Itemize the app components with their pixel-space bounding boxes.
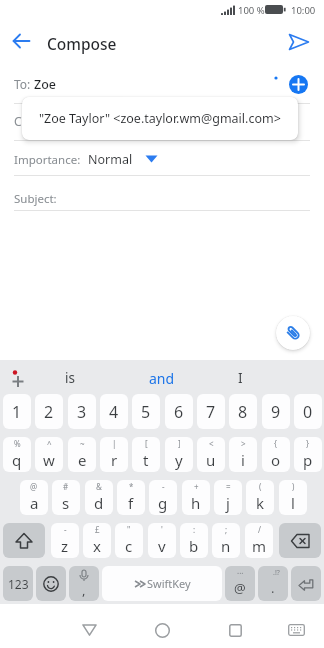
button[interactable]: [3, 523, 45, 558]
staticText: -: [64, 524, 67, 535]
button[interactable]: #: [52, 480, 80, 515]
button[interactable]: 6: [165, 394, 193, 429]
staticText: @: [234, 579, 246, 597]
button[interactable]: (: [246, 480, 274, 515]
staticText: i: [241, 450, 245, 470]
button[interactable]: [219, 614, 251, 646]
staticText: 7: [206, 401, 216, 423]
staticText: x: [93, 536, 101, 556]
button[interactable]: 2: [35, 394, 63, 429]
button[interactable]: 7: [197, 394, 225, 429]
staticText: w: [43, 450, 55, 470]
staticText: h: [191, 493, 201, 513]
button[interactable]: +: [182, 480, 210, 515]
button[interactable]: 3: [68, 394, 96, 429]
button[interactable]: &: [85, 480, 113, 515]
staticText: To:: [14, 76, 31, 92]
button[interactable]: >: [229, 437, 257, 472]
button[interactable]: [280, 614, 312, 646]
staticText: y: [175, 450, 183, 470]
button[interactable]: }: [294, 437, 322, 472]
button[interactable]: <: [197, 437, 225, 472]
button[interactable]: [280, 23, 318, 61]
staticText: {: [274, 438, 278, 449]
button[interactable]: -: [51, 523, 79, 558]
button[interactable]: £: [83, 523, 111, 558]
staticText: n: [221, 536, 231, 556]
staticText: g: [158, 493, 168, 513]
button[interactable]: {: [262, 437, 290, 472]
button[interactable]: :: [180, 523, 208, 558]
staticText: /: [258, 524, 261, 535]
button[interactable]: /: [245, 523, 273, 558]
staticText: %: [14, 438, 21, 449]
button[interactable]: and: [132, 363, 192, 393]
staticText: |: [112, 438, 117, 449]
staticText: ^: [47, 438, 52, 449]
staticText: @: [30, 481, 38, 492]
button[interactable]: 123: [3, 566, 33, 601]
button[interactable]: ,: [69, 566, 99, 601]
button[interactable]: [6, 26, 36, 56]
button[interactable]: is: [40, 363, 100, 393]
staticText: ~: [80, 438, 85, 449]
staticText: is: [65, 369, 75, 387]
button[interactable]: @: [20, 480, 48, 515]
button[interactable]: [: [132, 437, 160, 472]
button[interactable]: ": [115, 523, 143, 558]
button[interactable]: 4: [100, 394, 128, 429]
button[interactable]: 1: [3, 394, 31, 429]
staticText: s: [62, 493, 70, 513]
staticText: ...: [237, 566, 244, 576]
staticText: u: [206, 450, 216, 470]
staticText: I: [238, 369, 243, 387]
button[interactable]: .!?: [258, 566, 288, 601]
button[interactable]: [73, 614, 105, 646]
staticText: j: [226, 493, 230, 513]
button[interactable]: [276, 316, 310, 350]
staticText: .!?: [273, 568, 280, 578]
button[interactable]: [146, 614, 178, 646]
staticText: l: [291, 493, 295, 513]
staticText: 2: [44, 401, 54, 423]
button[interactable]: 5: [132, 394, 160, 429]
button[interactable]: ...: [225, 566, 255, 601]
button[interactable]: ~: [68, 437, 96, 472]
staticText: &: [96, 481, 102, 492]
button[interactable]: *: [117, 480, 145, 515]
button[interactable]: ': [148, 523, 176, 558]
staticText: o: [271, 450, 281, 470]
staticText: m: [252, 536, 267, 556]
button[interactable]: =: [214, 480, 242, 515]
staticText: 0: [303, 401, 313, 423]
button[interactable]: ): [279, 480, 307, 515]
staticText: #: [63, 481, 69, 492]
button[interactable]: -: [149, 480, 177, 515]
staticText: e: [78, 450, 87, 470]
button[interactable]: %: [3, 437, 31, 472]
button[interactable]: 8: [229, 394, 257, 429]
button[interactable]: I: [210, 363, 270, 393]
staticText: 1: [12, 401, 22, 423]
button[interactable]: "Zoe Taylor" <zoe.taylor.wm@gmail.com>: [22, 97, 298, 140]
button[interactable]: [291, 566, 321, 601]
button[interactable]: [289, 75, 308, 94]
button[interactable]: 0: [294, 394, 322, 429]
button[interactable]: ;: [212, 523, 240, 558]
button[interactable]: ]: [165, 437, 193, 472]
button[interactable]: SwiftKey: [102, 566, 222, 601]
button[interactable]: [4, 364, 32, 392]
staticText: "Zoe Taylor" <zoe.taylor.wm@gmail.com>: [39, 110, 281, 127]
button[interactable]: Importance:: [0, 141, 324, 175]
button[interactable]: [279, 523, 321, 558]
button[interactable]: 9: [262, 394, 290, 429]
staticText: C: [14, 113, 22, 129]
staticText: 5: [141, 401, 151, 423]
button[interactable]: [36, 566, 66, 601]
staticText: Normal: [88, 151, 133, 168]
button[interactable]: |: [100, 437, 128, 472]
button[interactable]: ^: [35, 437, 63, 472]
staticText: z: [61, 536, 69, 556]
staticText: :: [193, 524, 196, 535]
staticText: v: [158, 536, 166, 556]
